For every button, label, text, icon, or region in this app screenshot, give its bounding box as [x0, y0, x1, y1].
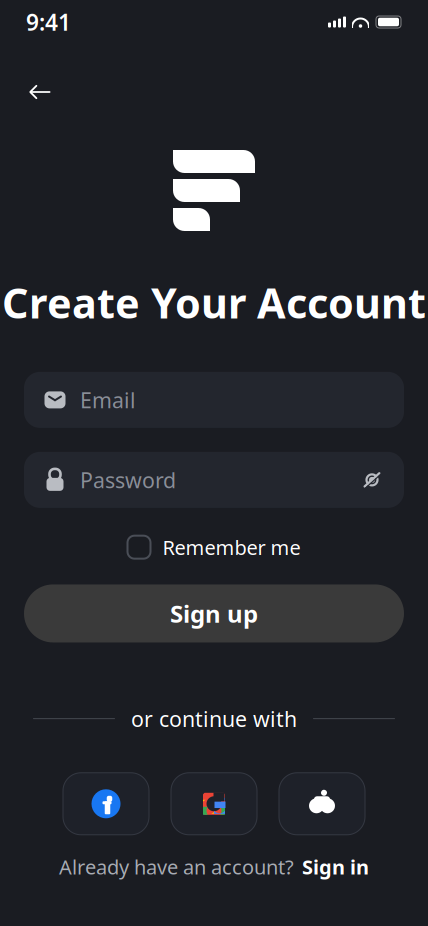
button[interactable]: Password — [24, 452, 404, 508]
staticText: Remember me — [162, 534, 300, 560]
button[interactable]: Continue with Google — [171, 773, 257, 835]
button[interactable]: Back — [14, 70, 66, 114]
staticText: Already have an account? — [59, 853, 294, 880]
staticText: or continue with — [131, 704, 297, 733]
button[interactable]: Sign up — [24, 584, 404, 642]
button[interactable]: Email — [24, 372, 404, 428]
staticText: 9:41 — [26, 7, 71, 37]
staticText: Email — [80, 386, 136, 414]
staticText: Sign up — [170, 597, 258, 629]
staticText: Password — [80, 466, 176, 494]
staticText: Create Your Account — [2, 275, 426, 330]
button[interactable]: Continue with Apple — [279, 773, 365, 835]
button[interactable]: Remember me — [127, 528, 300, 566]
button[interactable]: Sign in — [302, 853, 369, 880]
staticText: Sign in — [302, 853, 369, 880]
button[interactable]: Continue with Facebook — [63, 773, 149, 835]
